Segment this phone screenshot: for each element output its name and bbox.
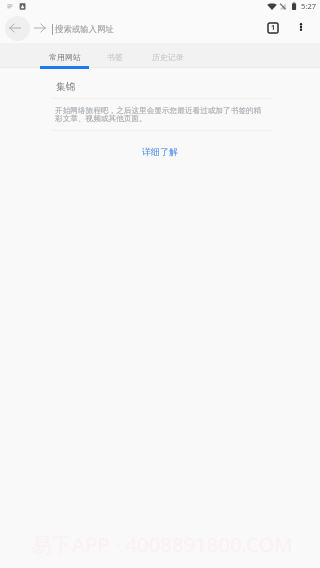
staticText: 搜索或输入网址 <box>55 24 114 35</box>
staticText: 历史记录 <box>152 52 184 62</box>
button[interactable]: 常用网站 <box>40 43 89 70</box>
button[interactable]: Forward <box>30 16 52 43</box>
staticText: 书签 <box>107 52 123 62</box>
button[interactable]: Tabs <box>260 16 286 43</box>
staticText: 5:27 <box>301 1 317 11</box>
button[interactable]: 历史记录 <box>143 43 192 70</box>
staticText: 开始网络旅程吧，之后这里会显示您最近看过或加了书签的精彩文章、视频或其他页面。 <box>55 106 264 123</box>
button[interactable]: 详细了解 <box>136 142 184 161</box>
button[interactable]: 书签 <box>90 43 139 70</box>
staticText: 详细了解 <box>142 146 178 157</box>
staticText: 1 <box>271 23 276 33</box>
button[interactable]: More options <box>288 16 314 43</box>
staticText: 集锦 <box>56 81 76 93</box>
button[interactable]: Back <box>5 16 30 41</box>
staticText: 常用网站 <box>49 52 81 62</box>
button[interactable]: 搜索或输入网址 <box>52 16 252 43</box>
staticText: 易下APP · 4008891800.COM <box>31 530 293 558</box>
